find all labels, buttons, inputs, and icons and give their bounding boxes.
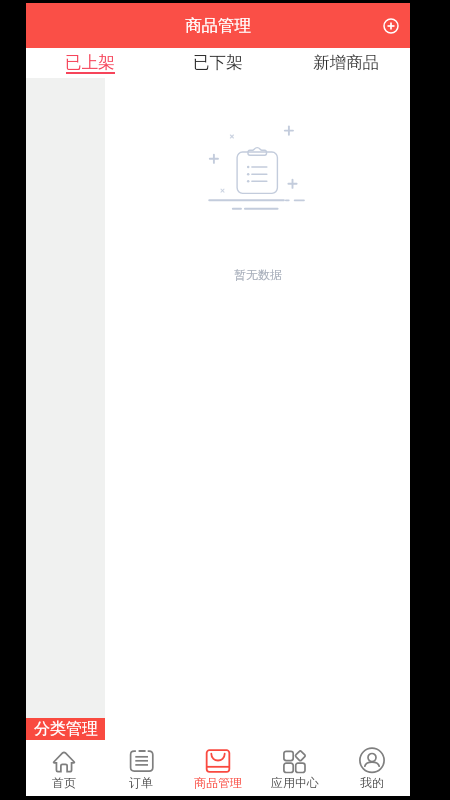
button[interactable]: 订单 (102, 742, 179, 796)
staticText: 商品管理 (185, 15, 251, 36)
staticText: 分类管理 (34, 719, 98, 739)
staticText: 暂无数据 (234, 267, 282, 282)
staticText: 已上架 (65, 52, 115, 73)
staticText: 应用中心 (271, 775, 319, 790)
staticText: 商品管理 (194, 775, 242, 790)
staticText: 我的 (360, 775, 384, 790)
button[interactable]: 首页 (26, 742, 102, 796)
button[interactable]: 我的 (333, 742, 410, 796)
staticText: 订单 (129, 775, 153, 790)
staticText: 已下架 (193, 52, 243, 73)
button[interactable]: 分类管理 (26, 718, 105, 740)
button[interactable]: 商品管理 (179, 742, 256, 796)
staticText: 新增商品 (313, 52, 379, 73)
button[interactable]: 应用中心 (256, 742, 333, 796)
button[interactable]: 新增商品 (282, 48, 410, 78)
staticText: 首页 (52, 775, 76, 790)
button[interactable]: 已下架 (154, 48, 282, 78)
button[interactable]: Add product (375, 10, 407, 42)
button[interactable]: 已上架 (26, 48, 154, 78)
